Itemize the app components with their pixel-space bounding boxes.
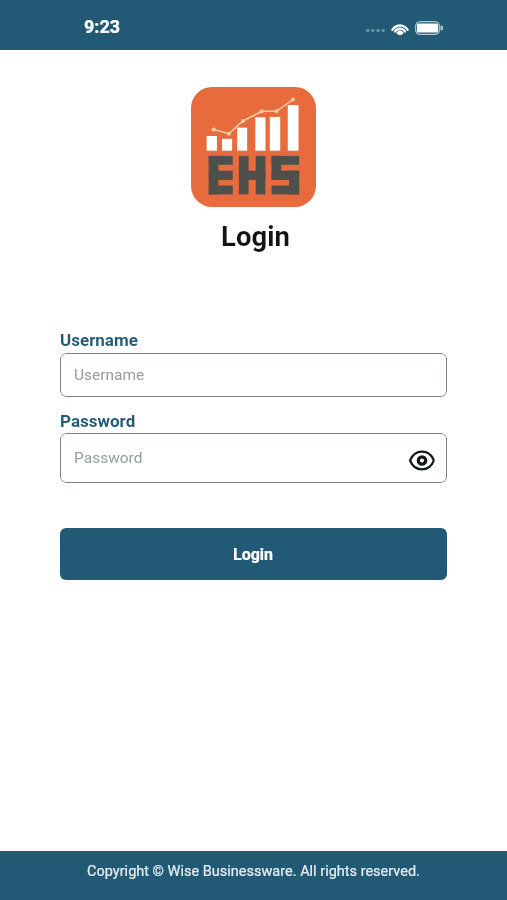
staticText: Password <box>60 411 136 431</box>
button[interactable]: Username <box>60 353 447 397</box>
staticText: Copyright © Wise Businessware. All right… <box>87 863 420 880</box>
staticText: Login <box>221 220 290 252</box>
button[interactable]: Show password <box>405 445 435 471</box>
staticText: 9:23 <box>84 16 121 36</box>
button[interactable]: Login <box>60 528 447 580</box>
staticText: Username <box>60 330 138 350</box>
staticText: Username <box>74 366 145 384</box>
staticText: Password <box>74 449 143 467</box>
button[interactable]: Password <box>60 433 447 483</box>
other: EHS logo <box>191 87 316 207</box>
staticText: Login <box>233 545 274 564</box>
